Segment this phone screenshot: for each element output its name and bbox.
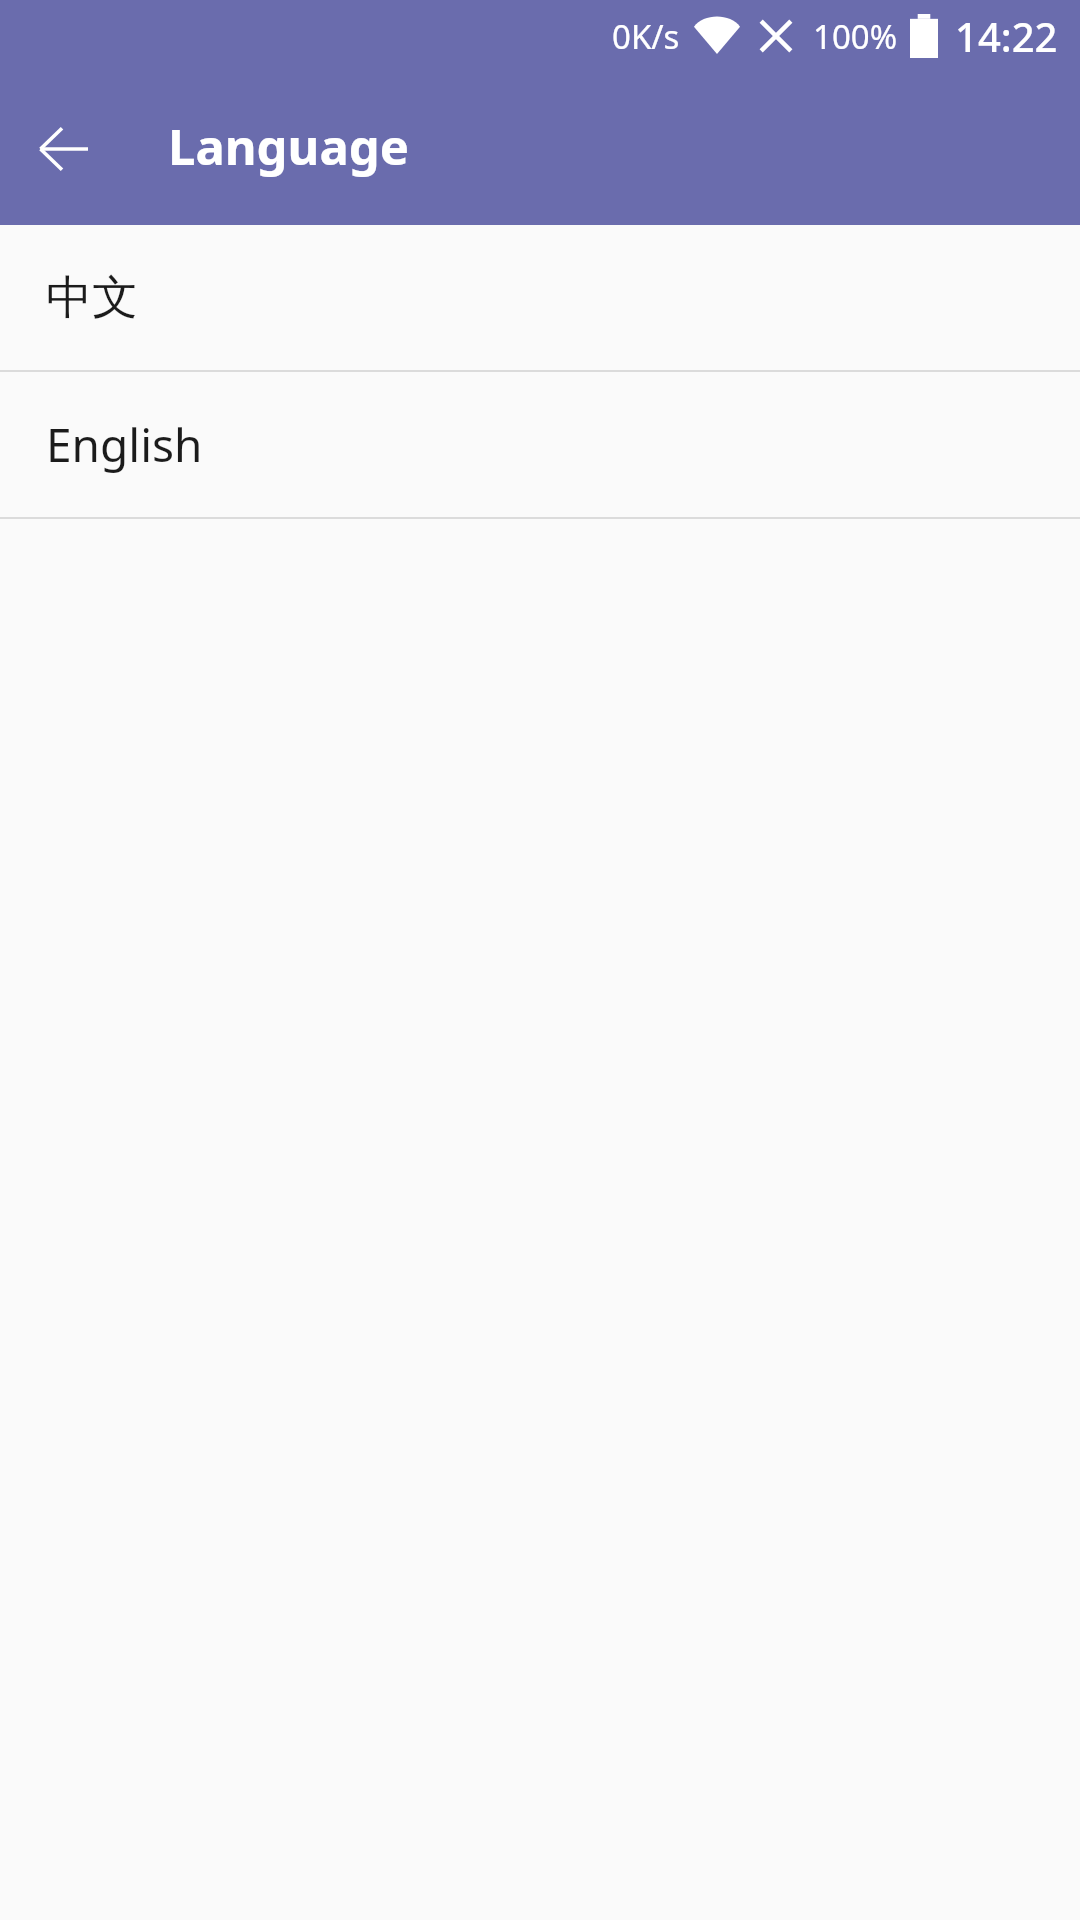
staticText: 中文 [46, 269, 138, 327]
staticText: 14:22 [955, 9, 1058, 63]
button[interactable]: 中文 [0, 225, 1080, 370]
button[interactable]: English [0, 372, 1080, 517]
staticText: 100% [813, 14, 898, 59]
button[interactable]: Back [18, 103, 110, 195]
staticText: 0K/s [612, 14, 680, 59]
staticText: Language [168, 113, 409, 180]
staticText: English [46, 413, 203, 476]
